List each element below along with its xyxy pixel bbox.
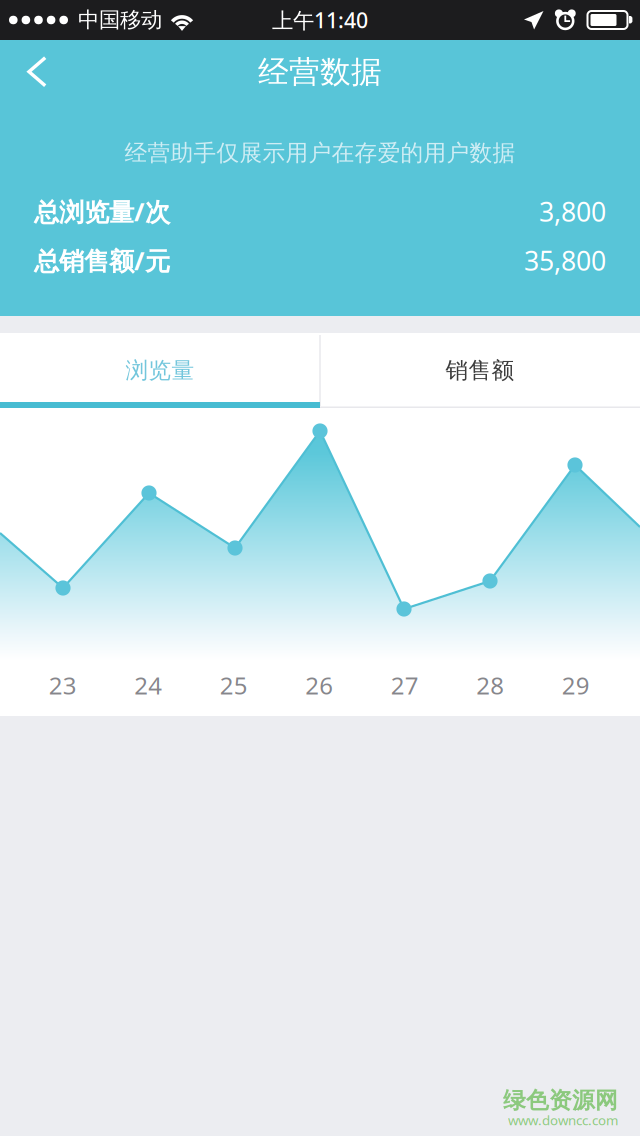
button[interactable]: 浏览量 <box>0 333 320 408</box>
staticText: 销售额 <box>445 357 514 384</box>
button[interactable]: 销售额 <box>320 333 640 408</box>
staticText: 29 <box>562 669 590 701</box>
staticText: 28 <box>476 669 504 701</box>
staticText: www.downcc.com <box>508 1111 618 1129</box>
staticText: 25 <box>220 669 248 701</box>
staticText: 24 <box>134 669 162 701</box>
button[interactable]: Back <box>0 40 62 104</box>
staticText: 中国移动 <box>78 7 162 33</box>
staticText: 26 <box>305 669 333 701</box>
staticText: 23 <box>49 669 77 701</box>
staticText: 绿色资源网 <box>503 1086 618 1114</box>
staticText: 27 <box>391 669 419 701</box>
staticText: 经营数据 <box>258 53 382 91</box>
staticText: 浏览量 <box>125 357 194 384</box>
staticText: 上午11:40 <box>272 6 368 34</box>
staticText: 总浏览量/次 <box>34 195 170 228</box>
staticText: 35,800 <box>524 243 606 278</box>
staticText: 总销售额/元 <box>34 244 170 277</box>
staticText: 3,800 <box>539 194 606 229</box>
staticText: 经营助手仅展示用户在存爱的用户数据 <box>124 139 515 167</box>
